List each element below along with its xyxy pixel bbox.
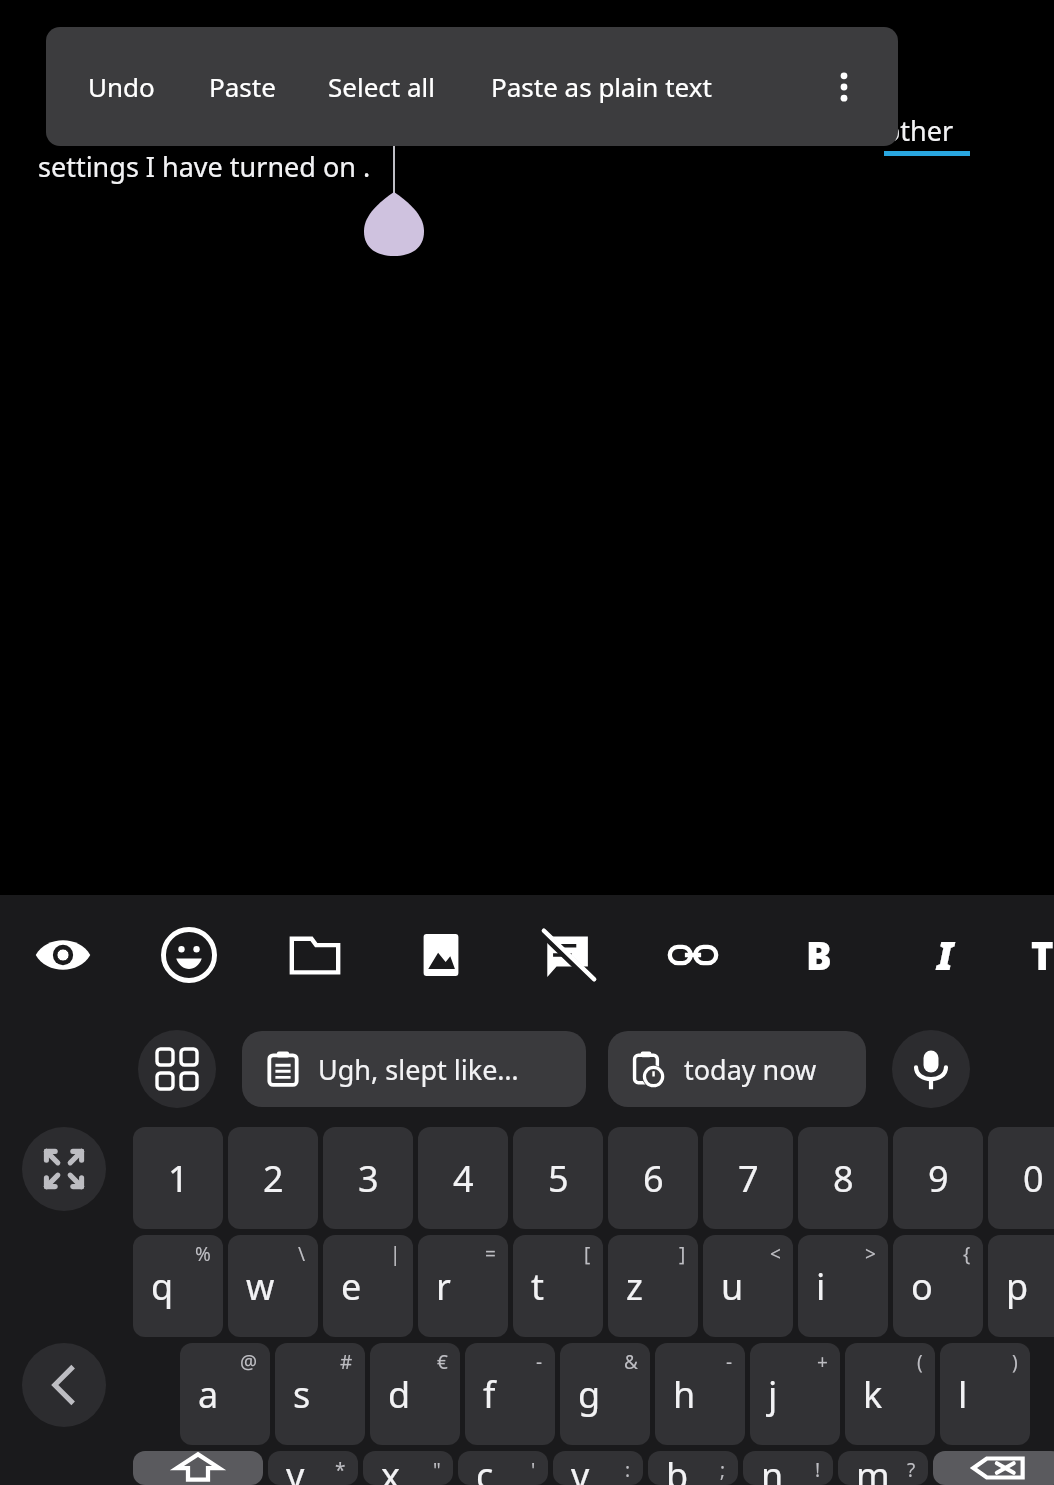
staticText: i: [816, 1262, 826, 1311]
staticText: 4: [453, 1154, 474, 1203]
button[interactable]: {: [893, 1235, 983, 1337]
button[interactable]: Link: [652, 914, 734, 996]
button[interactable]: Emoji: [148, 914, 230, 996]
button[interactable]: 4: [418, 1127, 508, 1229]
button[interactable]: Folder: [274, 914, 356, 996]
staticText: ]: [679, 1241, 686, 1267]
button[interactable]: Voice input: [892, 1030, 970, 1108]
button[interactable]: <: [703, 1235, 793, 1337]
button[interactable]: Back: [22, 1343, 106, 1427]
button[interactable]: Ugh, slept like…: [242, 1031, 586, 1107]
button[interactable]: T: [1030, 914, 1054, 996]
staticText: c: [476, 1451, 494, 1485]
staticText: d: [388, 1370, 411, 1419]
staticText: today now: [684, 1051, 817, 1088]
button[interactable]: 0: [988, 1127, 1054, 1229]
staticText: <: [770, 1241, 781, 1267]
button[interactable]: ?: [838, 1451, 928, 1485]
staticText: T: [1031, 929, 1054, 981]
staticText: I: [937, 929, 954, 981]
button[interactable]: ;: [648, 1451, 738, 1485]
button[interactable]: Expand keyboard: [22, 1127, 106, 1211]
staticText: other: [884, 112, 954, 149]
staticText: Undo: [88, 69, 155, 104]
staticText: ?: [907, 1457, 916, 1483]
button[interactable]: Image: [400, 914, 482, 996]
button[interactable]: Clipboard grid: [138, 1030, 216, 1108]
button[interactable]: B: [778, 914, 860, 996]
button[interactable]: Shift: [133, 1451, 263, 1485]
staticText: !: [815, 1457, 821, 1483]
staticText: 5: [548, 1154, 569, 1203]
button[interactable]: %: [133, 1235, 223, 1337]
button[interactable]: -: [465, 1343, 555, 1445]
button[interactable]: 9: [893, 1127, 983, 1229]
staticText: t: [531, 1262, 544, 1311]
staticText: (: [917, 1349, 923, 1375]
staticText: ;: [720, 1457, 726, 1483]
staticText: *: [335, 1457, 346, 1483]
button[interactable]: @: [180, 1343, 270, 1445]
button[interactable]: -: [655, 1343, 745, 1445]
staticText: \: [298, 1241, 306, 1267]
staticText: Paste: [209, 69, 276, 104]
staticText: 8: [833, 1154, 854, 1203]
button[interactable]: Undo: [86, 59, 157, 114]
button[interactable]: Hide comment: [526, 914, 608, 996]
staticText: k: [863, 1370, 883, 1419]
button[interactable]: }: [988, 1235, 1054, 1337]
staticText: s: [293, 1370, 311, 1419]
button[interactable]: ): [940, 1343, 1030, 1445]
staticText: -: [536, 1349, 543, 1375]
button[interactable]: €: [370, 1343, 460, 1445]
staticText: 9: [928, 1154, 949, 1203]
button[interactable]: +: [750, 1343, 840, 1445]
staticText: 2: [263, 1154, 284, 1203]
button[interactable]: 1: [133, 1127, 223, 1229]
staticText: l: [958, 1370, 968, 1419]
button[interactable]: *: [268, 1451, 358, 1485]
button[interactable]: ": [363, 1451, 453, 1485]
button[interactable]: >: [798, 1235, 888, 1337]
button[interactable]: Paste as plain text: [489, 59, 714, 114]
button[interactable]: |: [323, 1235, 413, 1337]
staticText: 0: [1023, 1154, 1044, 1203]
button[interactable]: Backspace: [933, 1451, 1054, 1485]
button[interactable]: \: [228, 1235, 318, 1337]
staticText: 7: [738, 1154, 759, 1203]
button[interactable]: More options: [816, 59, 872, 115]
staticText: p: [1006, 1262, 1029, 1311]
button[interactable]: Select all: [326, 59, 437, 114]
button[interactable]: =: [418, 1235, 508, 1337]
staticText: v: [571, 1451, 590, 1485]
staticText: o: [911, 1262, 933, 1311]
staticText: B: [806, 929, 832, 981]
button[interactable]: 7: [703, 1127, 793, 1229]
staticText: |: [390, 1241, 401, 1267]
button[interactable]: !: [743, 1451, 833, 1485]
button[interactable]: I: [904, 914, 986, 996]
button[interactable]: ]: [608, 1235, 698, 1337]
button[interactable]: #: [275, 1343, 365, 1445]
staticText: [: [584, 1241, 591, 1267]
staticText: f: [483, 1370, 496, 1419]
staticText: @: [240, 1349, 258, 1375]
button[interactable]: ': [458, 1451, 548, 1485]
staticText: ): [1012, 1349, 1018, 1375]
button[interactable]: 5: [513, 1127, 603, 1229]
staticText: q: [151, 1262, 174, 1311]
button[interactable]: (: [845, 1343, 935, 1445]
staticText: h: [673, 1370, 696, 1419]
button[interactable]: Paste: [207, 59, 278, 114]
button[interactable]: 8: [798, 1127, 888, 1229]
button[interactable]: today now: [608, 1031, 866, 1107]
staticText: &: [624, 1349, 638, 1375]
button[interactable]: 2: [228, 1127, 318, 1229]
button[interactable]: Preview: [22, 914, 104, 996]
button[interactable]: &: [560, 1343, 650, 1445]
button[interactable]: 6: [608, 1127, 698, 1229]
button[interactable]: :: [553, 1451, 643, 1485]
button[interactable]: [: [513, 1235, 603, 1337]
button[interactable]: 3: [323, 1127, 413, 1229]
staticText: z: [626, 1262, 643, 1311]
